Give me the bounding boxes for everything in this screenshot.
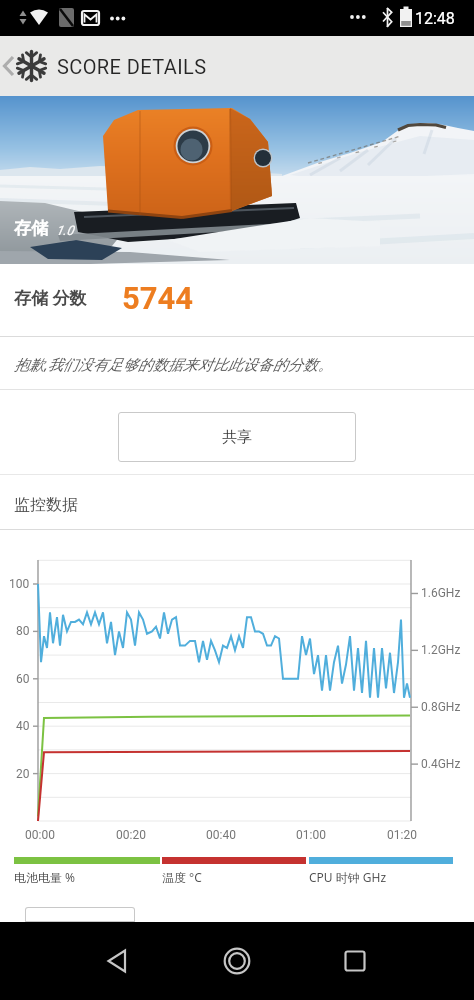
button[interactable] [320,926,390,996]
staticText: 抱歉,我们没有足够的数据来对比此设备的分数。 [14,354,333,374]
button[interactable]: 共享 [118,412,356,462]
staticText: 存储 [14,218,48,239]
staticText: 存储 分数 [14,286,87,309]
staticText: 5744 [122,280,194,316]
staticText: 1.0 [56,223,74,238]
button[interactable] [0,36,54,96]
staticText: 监控数据 [14,495,78,515]
staticText: 共享 [222,428,252,447]
button[interactable] [25,907,135,922]
staticText: 12:48 [415,9,455,28]
staticText: SCORE DETAILS [57,55,207,78]
button[interactable] [202,926,272,996]
button[interactable] [83,926,153,996]
